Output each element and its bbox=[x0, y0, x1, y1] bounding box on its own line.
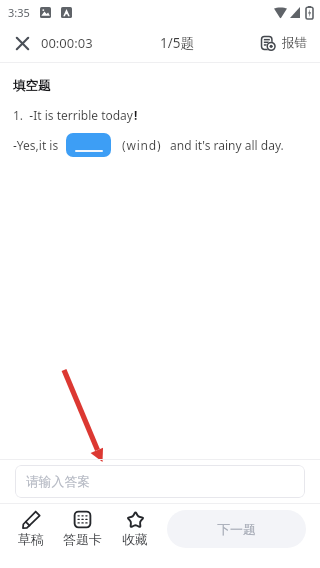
staticText: 填空题 bbox=[13, 78, 51, 94]
staticText: 1. -It is terrible today bbox=[13, 107, 133, 123]
button[interactable]: Close bbox=[7, 28, 37, 58]
button[interactable]: Blank bbox=[66, 133, 111, 157]
button[interactable]: 报错 bbox=[261, 35, 307, 51]
staticText: 报错 bbox=[282, 35, 307, 51]
button[interactable]: 请输入答案 bbox=[15, 465, 305, 498]
staticText: and it's rainy all day. bbox=[170, 137, 284, 153]
button[interactable]: 答题卡 bbox=[57, 509, 107, 548]
staticText: 00:00:03 bbox=[41, 34, 93, 52]
staticText: 草稿 bbox=[18, 531, 44, 547]
staticText: 答题卡 bbox=[63, 531, 102, 547]
staticText: 1/5题 bbox=[160, 34, 194, 52]
staticText: ! bbox=[134, 107, 138, 123]
staticText: 请输入答案 bbox=[26, 474, 90, 490]
button[interactable]: 草稿 bbox=[6, 509, 56, 548]
button[interactable]: 收藏 bbox=[110, 509, 160, 548]
staticText: 下一题 bbox=[217, 521, 256, 537]
staticText: -Yes,it is bbox=[13, 137, 59, 153]
staticText: 收藏 bbox=[122, 531, 148, 547]
staticText: (wind) bbox=[122, 137, 162, 153]
staticText: 3:35 bbox=[8, 5, 30, 20]
button[interactable]: 下一题 bbox=[167, 510, 306, 548]
